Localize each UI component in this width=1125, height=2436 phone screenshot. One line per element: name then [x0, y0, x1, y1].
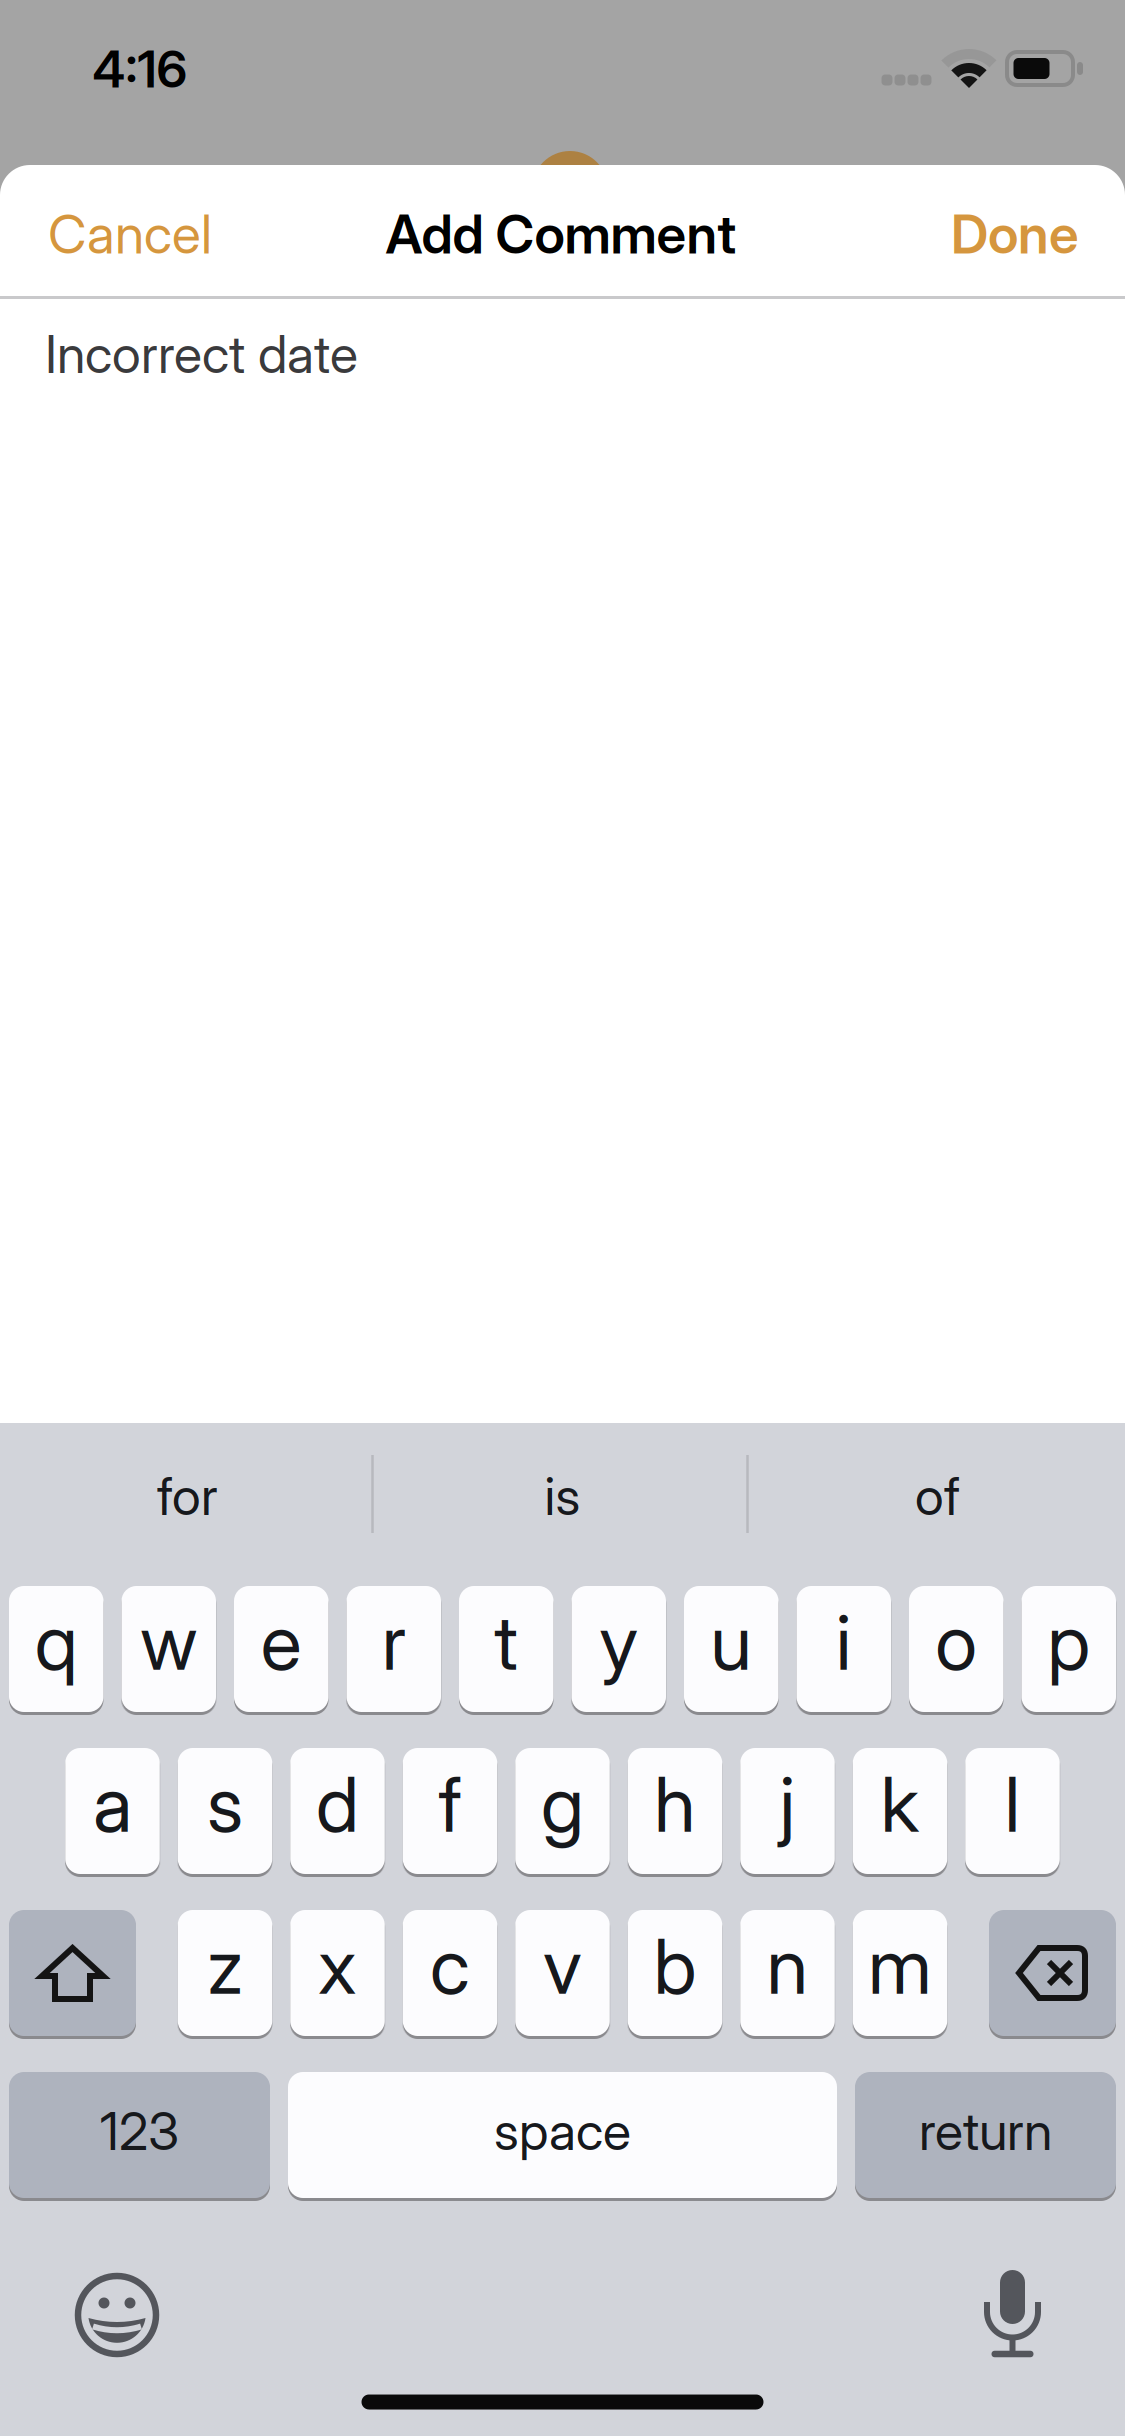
- button[interactable]: of: [752, 1456, 1122, 1536]
- staticText: b: [653, 1921, 696, 2011]
- button[interactable]: f: [403, 1748, 497, 1874]
- button[interactable]: g: [515, 1748, 610, 1874]
- button[interactable]: a: [65, 1748, 160, 1874]
- staticText: m: [868, 1921, 932, 2011]
- button[interactable]: Delete: [989, 1910, 1116, 2036]
- button[interactable]: k: [853, 1748, 947, 1874]
- staticText: u: [710, 1597, 752, 1687]
- button[interactable]: m: [853, 1910, 947, 2036]
- staticText: q: [35, 1597, 78, 1687]
- staticText: k: [880, 1759, 919, 1849]
- button[interactable]: c: [403, 1910, 497, 2036]
- staticText: Incorrect date: [45, 323, 358, 385]
- button[interactable]: d: [290, 1748, 385, 1874]
- button[interactable]: Done: [839, 186, 1079, 282]
- button[interactable]: Dictation: [964, 2264, 1060, 2360]
- staticText: t: [494, 1597, 518, 1687]
- button[interactable]: s: [178, 1748, 272, 1874]
- button[interactable]: return: [855, 2072, 1116, 2198]
- staticText: w: [140, 1597, 197, 1687]
- staticText: 4:16: [92, 39, 187, 99]
- staticText: d: [316, 1759, 359, 1849]
- staticText: l: [1004, 1759, 1020, 1849]
- staticText: 123: [100, 2100, 179, 2162]
- button[interactable]: u: [684, 1586, 778, 1712]
- staticText: h: [654, 1759, 696, 1849]
- button[interactable]: Cancel: [48, 186, 288, 282]
- button[interactable]: n: [740, 1910, 835, 2036]
- button[interactable]: h: [628, 1748, 722, 1874]
- staticText: v: [543, 1921, 582, 2011]
- button[interactable]: w: [121, 1586, 216, 1712]
- staticText: i: [836, 1597, 852, 1687]
- button[interactable]: b: [628, 1910, 722, 2036]
- button[interactable]: j: [740, 1748, 835, 1874]
- staticText: n: [766, 1921, 808, 2011]
- button[interactable]: v: [515, 1910, 610, 2036]
- button[interactable]: is: [377, 1456, 747, 1536]
- staticText: f: [438, 1759, 461, 1849]
- button[interactable]: for: [2, 1456, 372, 1536]
- button[interactable]: y: [571, 1586, 666, 1712]
- button[interactable]: o: [909, 1586, 1003, 1712]
- staticText: c: [430, 1921, 470, 2011]
- staticText: g: [541, 1759, 584, 1849]
- staticText: y: [599, 1597, 638, 1687]
- staticText: for: [157, 1465, 218, 1527]
- button[interactable]: p: [1021, 1586, 1116, 1712]
- button[interactable]: r: [346, 1586, 441, 1712]
- staticText: space: [494, 2100, 631, 2162]
- staticText: is: [544, 1465, 580, 1527]
- button[interactable]: i: [796, 1586, 891, 1712]
- button[interactable]: q: [9, 1586, 103, 1712]
- staticText: r: [382, 1597, 406, 1687]
- staticText: a: [93, 1759, 132, 1849]
- staticText: x: [318, 1921, 357, 2011]
- button[interactable]: Emoji: [69, 2267, 165, 2363]
- button[interactable]: Shift: [9, 1910, 136, 2036]
- button[interactable]: t: [459, 1586, 553, 1712]
- button[interactable]: l: [965, 1748, 1060, 1874]
- staticText: p: [1047, 1597, 1090, 1687]
- button[interactable]: space: [288, 2072, 837, 2198]
- staticText: o: [935, 1597, 977, 1687]
- button[interactable]: z: [178, 1910, 272, 2036]
- staticText: Cancel: [48, 202, 212, 265]
- button[interactable]: 123: [9, 2072, 270, 2198]
- staticText: Add Comment: [385, 202, 736, 265]
- staticText: of: [915, 1465, 960, 1527]
- staticText: e: [261, 1597, 302, 1687]
- button[interactable]: e: [234, 1586, 328, 1712]
- staticText: j: [779, 1759, 795, 1849]
- staticText: return: [919, 2100, 1052, 2162]
- staticText: z: [207, 1921, 243, 2011]
- staticText: s: [207, 1759, 243, 1849]
- staticText: Done: [951, 202, 1079, 265]
- button[interactable]: x: [290, 1910, 385, 2036]
